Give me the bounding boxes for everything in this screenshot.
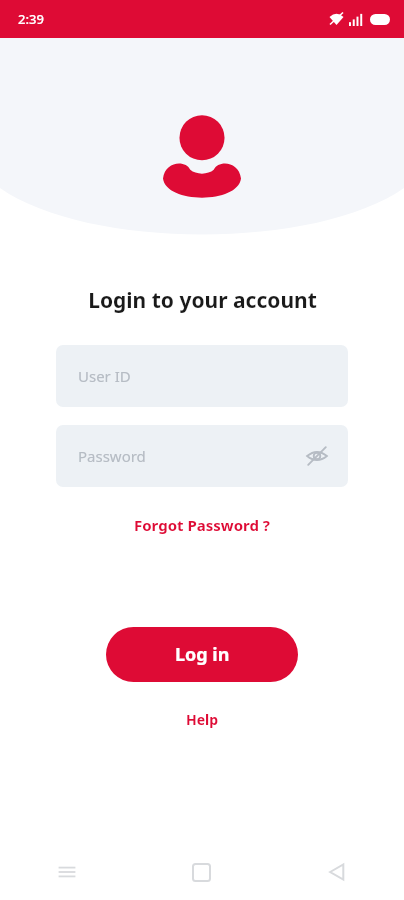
button[interactable]: Log in <box>106 627 298 682</box>
button[interactable]: Home <box>134 844 269 900</box>
staticText: 2:39 <box>18 10 44 28</box>
staticText: Login to your account <box>88 286 317 315</box>
staticText: Help <box>186 710 219 729</box>
button[interactable]: Show password <box>300 439 334 473</box>
staticText: User ID <box>78 366 131 386</box>
staticText: Log in <box>175 642 230 667</box>
other: User avatar <box>163 112 241 204</box>
button[interactable]: Help <box>172 704 233 735</box>
button[interactable]: Forgot Password ? <box>124 509 280 541</box>
staticText: Password <box>78 446 146 466</box>
button[interactable]: User ID <box>56 345 348 407</box>
staticText: Forgot Password ? <box>134 515 270 535</box>
button[interactable]: Recents <box>0 844 134 900</box>
button[interactable]: Back <box>269 844 404 900</box>
button[interactable]: Password <box>56 425 348 487</box>
